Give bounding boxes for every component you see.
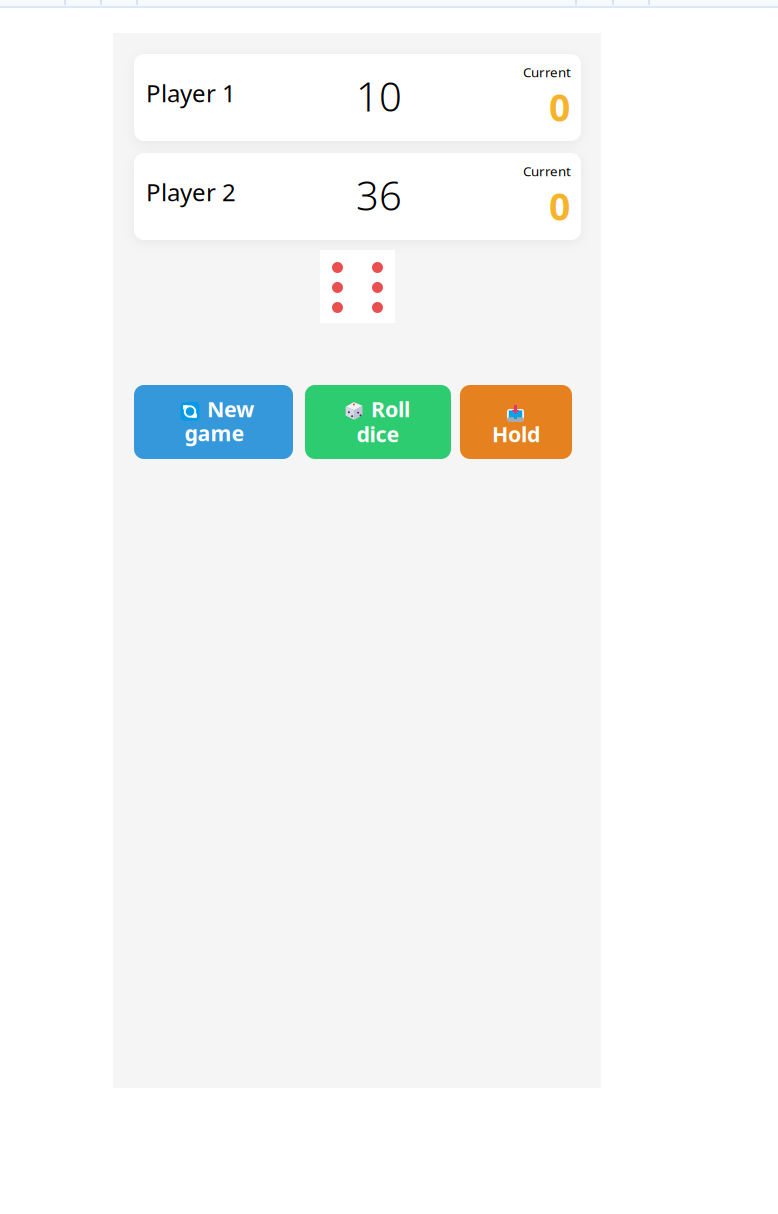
- staticText: Current: [523, 63, 571, 81]
- staticText: Player 1: [146, 77, 236, 109]
- staticText: 0: [549, 82, 570, 132]
- staticText: Roll: [371, 395, 410, 423]
- staticText: New: [207, 395, 254, 423]
- staticText: 0: [549, 181, 570, 231]
- button[interactable]: Hold: [460, 385, 572, 459]
- staticText: Player 2: [146, 176, 236, 208]
- staticText: dice: [356, 420, 399, 448]
- staticText: Hold: [492, 420, 540, 448]
- staticText: 36: [356, 168, 402, 221]
- staticText: Current: [523, 162, 571, 180]
- button[interactable]: New: [134, 385, 293, 459]
- staticText: 10: [356, 69, 402, 122]
- button[interactable]: Roll: [305, 385, 451, 459]
- staticText: game: [184, 419, 244, 447]
